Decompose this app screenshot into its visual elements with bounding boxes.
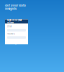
staticText: insights <box>5 7 16 10</box>
staticText: Email <box>7 25 11 28</box>
staticText: Password <box>7 33 15 35</box>
staticText: Get your data <box>5 4 26 7</box>
staticText: Sign in to your account <box>7 19 22 24</box>
